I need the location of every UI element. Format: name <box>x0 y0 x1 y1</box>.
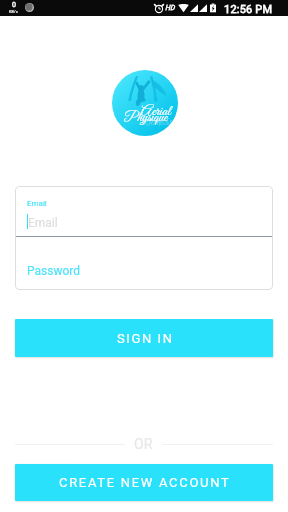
staticText: HD <box>165 4 175 12</box>
staticText: Email <box>27 199 47 208</box>
staticText: 12:56 PM <box>224 3 273 16</box>
staticText: CREATE NEW ACCOUNT <box>59 475 231 490</box>
staticText: SIGN IN <box>117 331 174 346</box>
staticText: Password <box>27 264 81 278</box>
staticText: Email <box>28 216 58 230</box>
staticText: Physique <box>124 109 168 127</box>
staticText: OR <box>134 436 153 452</box>
button[interactable]: SIGN IN <box>15 319 273 357</box>
button[interactable]: Email <box>15 186 273 236</box>
button[interactable]: Password <box>15 237 273 290</box>
staticText: KB/s <box>9 9 18 14</box>
staticText: Aerial <box>141 102 171 121</box>
staticText: 0 <box>12 1 16 9</box>
staticText: FITNESS <box>142 121 173 126</box>
button[interactable]: CREATE NEW ACCOUNT <box>15 464 273 501</box>
